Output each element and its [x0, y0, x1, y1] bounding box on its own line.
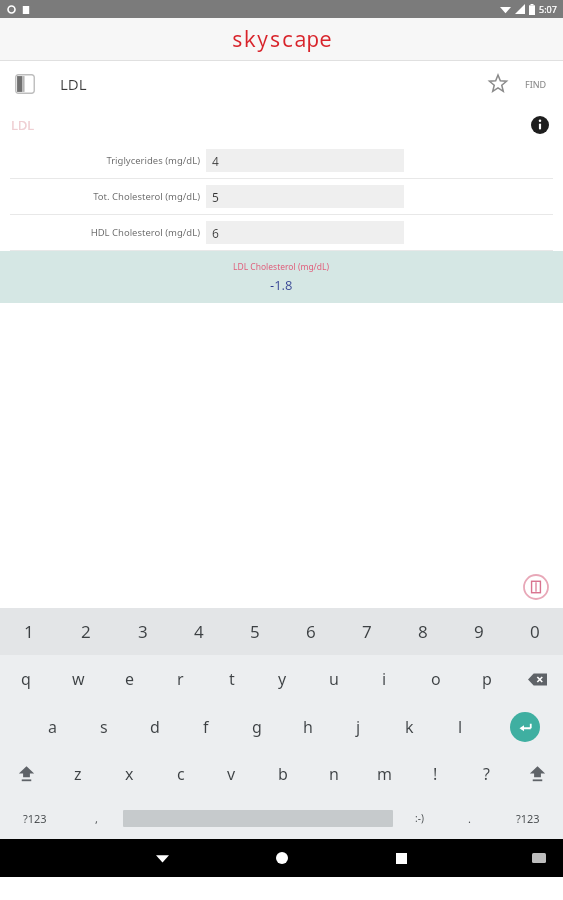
button[interactable]: Triglycerides (mg/dL) — [0, 143, 563, 178]
button[interactable]: ?123 — [493, 797, 563, 839]
button[interactable]: ? — [461, 750, 512, 797]
button[interactable]: 2 — [57, 608, 114, 655]
button[interactable]: h — [282, 703, 333, 750]
button[interactable]: . — [446, 797, 493, 839]
button[interactable]: p — [461, 655, 512, 703]
button[interactable]: Back — [145, 841, 179, 875]
staticText: h — [303, 716, 313, 738]
staticText: ?123 — [516, 811, 540, 826]
button[interactable]: j — [333, 703, 384, 750]
staticText: p — [482, 668, 492, 690]
button[interactable]: 1 — [0, 608, 57, 655]
staticText: b — [278, 763, 288, 785]
button[interactable]: q — [0, 655, 52, 703]
button[interactable]: z — [52, 750, 104, 797]
staticText: LDL — [60, 74, 87, 94]
staticText: i — [382, 668, 387, 690]
staticText: ! — [433, 763, 438, 785]
button[interactable]: Book — [12, 71, 38, 97]
staticText: LDL Cholesterol (mg/dL) — [233, 261, 330, 273]
staticText: 4 — [194, 620, 204, 643]
staticText: 2 — [81, 620, 91, 643]
button[interactable]: n — [308, 750, 359, 797]
button[interactable]: e — [104, 655, 155, 703]
staticText: k — [405, 716, 414, 738]
staticText: w — [72, 668, 85, 690]
button[interactable]: o — [410, 655, 461, 703]
staticText: t — [229, 668, 235, 690]
button[interactable]: :-) — [393, 797, 446, 839]
button[interactable]: d — [129, 703, 180, 750]
staticText: m — [377, 763, 392, 785]
staticText: LDL — [11, 116, 35, 134]
staticText: u — [329, 668, 339, 690]
button[interactable]: Recents — [384, 841, 418, 875]
button[interactable]: l — [435, 703, 486, 750]
staticText: Triglycerides (mg/dL) — [106, 154, 200, 167]
button[interactable]: Calculator — [521, 572, 551, 602]
button[interactable]: Tot. Cholesterol (mg/dL) — [0, 179, 563, 214]
button[interactable]: s — [78, 703, 129, 750]
button[interactable]: 8 — [395, 608, 451, 655]
button[interactable]: Keyboard — [529, 848, 549, 868]
button[interactable]: Space — [123, 797, 393, 839]
button[interactable]: 3 — [114, 608, 171, 655]
button[interactable]: 5 — [227, 608, 283, 655]
button[interactable]: Home — [265, 841, 299, 875]
button[interactable]: Backspace — [512, 655, 563, 703]
button[interactable]: Shift — [512, 750, 563, 797]
staticText: a — [48, 716, 57, 738]
button[interactable]: , — [70, 797, 123, 839]
button[interactable]: 4 — [171, 608, 227, 655]
button[interactable]: x — [104, 750, 155, 797]
staticText: HDL Cholesterol (mg/dL) — [90, 226, 200, 239]
button[interactable]: Favorite — [483, 69, 513, 99]
staticText: c — [177, 763, 185, 785]
button[interactable]: ! — [410, 750, 461, 797]
staticText: y — [278, 668, 287, 690]
button[interactable]: ?123 — [0, 797, 70, 839]
button[interactable]: 7 — [339, 608, 395, 655]
button[interactable]: Info — [527, 112, 553, 138]
staticText: r — [177, 668, 184, 690]
staticText: f — [203, 716, 209, 738]
staticText: 3 — [138, 620, 148, 643]
staticText: 0 — [530, 620, 540, 643]
button[interactable]: a — [27, 703, 78, 750]
staticText: q — [21, 668, 31, 690]
staticText: . — [468, 811, 471, 826]
button[interactable]: k — [384, 703, 435, 750]
button[interactable]: c — [155, 750, 206, 797]
staticText: e — [125, 668, 135, 690]
button[interactable]: Shift — [0, 750, 52, 797]
button[interactable]: HDL Cholesterol (mg/dL) — [0, 215, 563, 250]
staticText: d — [150, 716, 160, 738]
staticText: -1.8 — [270, 276, 293, 294]
button[interactable]: v — [206, 750, 257, 797]
button[interactable]: t — [206, 655, 257, 703]
button[interactable]: i — [359, 655, 410, 703]
button[interactable]: b — [257, 750, 308, 797]
button[interactable]: FIND — [521, 72, 551, 96]
button[interactable]: g — [231, 703, 282, 750]
staticText: l — [458, 716, 463, 738]
staticText: FIND — [525, 78, 547, 90]
staticText: o — [431, 668, 441, 690]
button[interactable]: r — [155, 655, 206, 703]
button[interactable]: 0 — [507, 608, 563, 655]
staticText: skyscape — [231, 25, 332, 54]
staticText: x — [125, 763, 134, 785]
staticText: j — [356, 716, 361, 738]
button[interactable]: f — [180, 703, 231, 750]
button[interactable]: u — [308, 655, 359, 703]
staticText: v — [227, 763, 236, 785]
button[interactable]: 6 — [283, 608, 339, 655]
staticText: 9 — [474, 620, 484, 643]
button[interactable]: Enter — [486, 703, 563, 750]
button[interactable]: w — [52, 655, 104, 703]
staticText: ? — [483, 763, 490, 785]
button[interactable]: 9 — [451, 608, 507, 655]
staticText: z — [74, 763, 82, 785]
button[interactable]: m — [359, 750, 410, 797]
button[interactable]: y — [257, 655, 308, 703]
